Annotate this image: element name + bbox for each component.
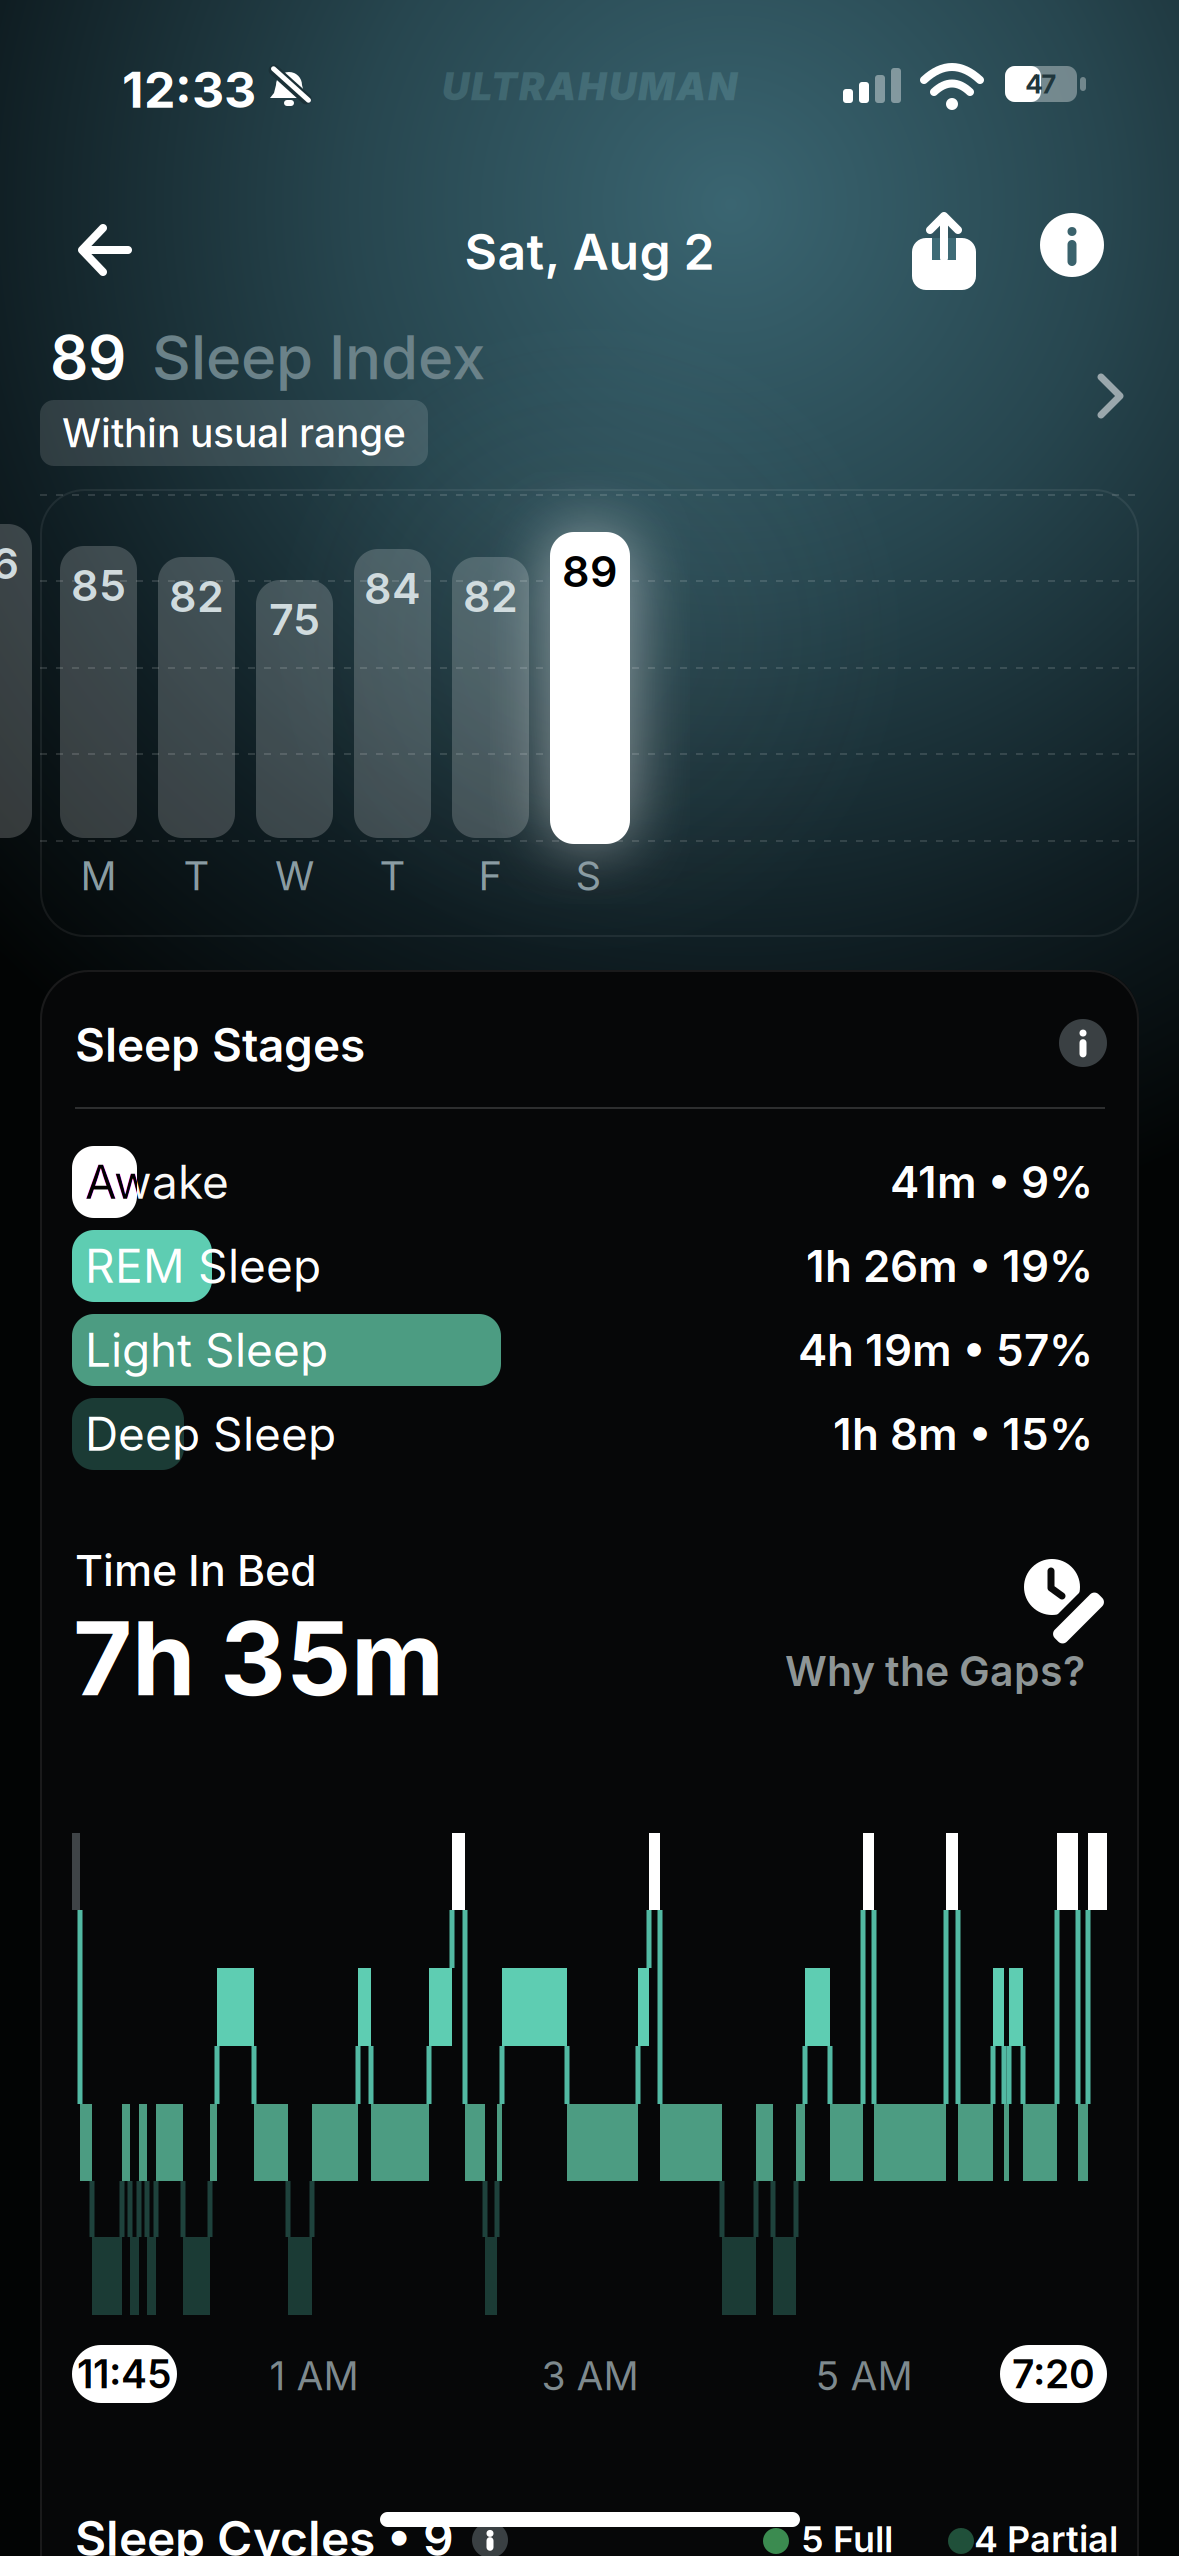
staticText: 5 Full xyxy=(801,2518,893,2556)
staticText: 89 xyxy=(562,546,618,597)
staticText: F xyxy=(478,852,502,899)
staticText: 84 xyxy=(364,563,421,614)
staticText: 1h 26m • 19% xyxy=(806,1240,1093,1292)
staticText: 1h 8m • 15% xyxy=(833,1408,1093,1460)
staticText: Sleep Stages xyxy=(75,1018,365,1072)
button[interactable] xyxy=(1040,213,1104,277)
staticText: 12:33 xyxy=(122,60,256,119)
button[interactable]: 89 xyxy=(550,532,630,844)
button[interactable]: 75 xyxy=(256,580,333,838)
button[interactable]: Why the Gaps? xyxy=(685,1646,1085,1696)
button[interactable] xyxy=(1059,1019,1107,1067)
staticText: 7:20 xyxy=(1012,2351,1095,2397)
staticText: 47 xyxy=(1025,69,1056,99)
staticText: 85 xyxy=(71,560,126,611)
staticText: Why the Gaps? xyxy=(785,1647,1085,1695)
staticText: 89 xyxy=(50,322,126,393)
button[interactable]: 82 xyxy=(452,557,529,838)
staticText: 7h 35m xyxy=(73,1598,444,1718)
staticText: 76 xyxy=(0,538,19,589)
staticText: ULTRAHUMAN xyxy=(442,64,737,109)
staticText: Deep Sleep xyxy=(85,1407,336,1461)
staticText: S xyxy=(575,852,601,899)
staticText: 1 AM xyxy=(269,2353,358,2399)
staticText: 3 AM xyxy=(541,2353,638,2399)
staticText: W xyxy=(275,852,314,899)
staticText: REM Sleep xyxy=(85,1239,321,1293)
staticText: 5 AM xyxy=(815,2353,912,2399)
staticText: Awake xyxy=(85,1155,229,1209)
button[interactable]: 89 xyxy=(0,322,1179,422)
staticText: T xyxy=(183,852,209,899)
staticText: 11:45 xyxy=(77,2351,172,2397)
staticText: Time In Bed xyxy=(75,1545,317,1596)
staticText: 4 Partial xyxy=(974,2518,1118,2556)
staticText: Light Sleep xyxy=(85,1323,328,1377)
staticText: Sleep Cycles • 9 xyxy=(75,2510,454,2556)
staticText: T xyxy=(379,852,405,899)
staticText: 82 xyxy=(169,571,224,622)
button[interactable] xyxy=(1020,1555,1112,1647)
staticText: Within usual range xyxy=(62,410,406,456)
staticText: M xyxy=(80,852,116,899)
button[interactable] xyxy=(70,214,150,286)
button[interactable]: 76 xyxy=(0,524,32,838)
staticText: Sleep Index xyxy=(152,322,485,393)
staticText: 4h 19m • 57% xyxy=(798,1324,1093,1376)
staticText: 41m • 9% xyxy=(890,1156,1093,1208)
button[interactable] xyxy=(472,2522,508,2556)
staticText: 75 xyxy=(269,594,320,645)
button[interactable]: 84 xyxy=(354,549,431,838)
staticText: 82 xyxy=(463,571,518,622)
button[interactable]: 82 xyxy=(158,557,235,838)
button[interactable]: 85 xyxy=(60,546,137,838)
button[interactable] xyxy=(906,212,982,290)
staticText: Sat, Aug 2 xyxy=(464,222,714,281)
